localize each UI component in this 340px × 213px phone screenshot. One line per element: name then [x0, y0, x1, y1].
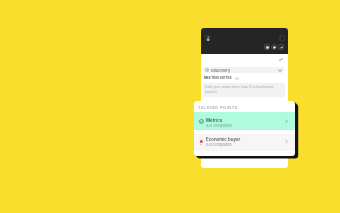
- staticText: TALKING POINTS: [198, 105, 238, 110]
- button[interactable]: Edit agenda: [278, 57, 283, 62]
- staticText: Discovery: [211, 68, 231, 73]
- staticText: Metrics: [206, 118, 223, 123]
- button[interactable]: Discovery: [203, 67, 284, 73]
- staticText: Economic buyer: [206, 137, 241, 142]
- button[interactable]: Mute microphone: [264, 44, 270, 50]
- staticText: 0/4 completed: [206, 142, 232, 146]
- button[interactable]: Turn off camera: [271, 44, 277, 50]
- staticText: MEETING NOTES: [204, 76, 232, 80]
- button[interactable]: Add your notes here (use # to bookmark p…: [203, 83, 285, 97]
- button[interactable]: Economic buyer: [194, 134, 295, 151]
- button[interactable]: Participant video: [204, 34, 211, 41]
- button[interactable]: Metrics: [194, 112, 295, 130]
- button[interactable]: Change layout: [279, 35, 285, 41]
- staticText: Add your notes here (use # to bookmark p…: [205, 85, 283, 94]
- button[interactable]: Share screen: [278, 44, 284, 50]
- staticText: 4/4 completed: [206, 123, 232, 127]
